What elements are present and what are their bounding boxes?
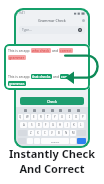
staticText: S xyxy=(31,123,33,127)
staticText: P xyxy=(82,115,84,119)
staticText: N xyxy=(65,131,68,135)
button[interactable]: Q xyxy=(18,114,23,120)
staticText: D xyxy=(38,123,41,127)
staticText: And Correct xyxy=(19,161,85,176)
staticText: that checks xyxy=(32,74,51,79)
staticText: This is an app xyxy=(8,74,31,79)
button[interactable]: X xyxy=(35,130,41,136)
button[interactable]: Tool 6 xyxy=(77,109,80,112)
button[interactable]: W xyxy=(24,114,30,120)
button[interactable]: P xyxy=(80,114,86,120)
button[interactable]: Enter xyxy=(77,138,86,144)
staticText: who check xyxy=(32,48,50,53)
button[interactable]: I xyxy=(66,114,72,120)
staticText: B xyxy=(58,131,60,135)
staticText: V xyxy=(51,131,53,135)
staticText: grammar. xyxy=(9,81,25,86)
staticText: U xyxy=(61,115,64,119)
button[interactable]: O xyxy=(73,114,79,120)
button[interactable]: L xyxy=(78,122,84,128)
button[interactable]: C xyxy=(42,130,48,136)
button[interactable]: S xyxy=(28,122,35,128)
staticText: F xyxy=(45,123,47,127)
button[interactable]: Tool 5 xyxy=(68,109,71,112)
staticText: This is an app xyxy=(8,48,31,53)
staticText: L xyxy=(80,123,82,127)
button[interactable]: J xyxy=(64,122,70,128)
button[interactable]: T xyxy=(45,114,51,120)
staticText: R xyxy=(40,115,42,119)
button[interactable]: Check xyxy=(20,97,84,105)
button[interactable]: Z xyxy=(28,130,34,136)
button[interactable]: E xyxy=(31,114,37,120)
staticText: Type... xyxy=(22,28,32,32)
button[interactable]: Type... xyxy=(19,26,85,34)
button[interactable]: F xyxy=(43,122,49,128)
staticText: H xyxy=(59,123,62,127)
button[interactable]: R xyxy=(38,114,44,120)
button[interactable]: More options xyxy=(82,19,85,22)
staticText: correct xyxy=(60,48,72,53)
button[interactable]: Tool 3 xyxy=(51,109,54,112)
button[interactable]: K xyxy=(71,122,77,128)
staticText: C xyxy=(44,131,46,135)
button[interactable]: Tool 1 xyxy=(33,109,36,112)
staticText: grammer xyxy=(9,55,25,60)
button[interactable]: M xyxy=(70,130,76,136)
staticText: I xyxy=(69,115,70,119)
button[interactable]: Tool 4 xyxy=(59,109,62,112)
staticText: O xyxy=(75,115,78,119)
staticText: J xyxy=(67,123,68,127)
staticText: and xyxy=(52,74,60,79)
button[interactable]: V xyxy=(49,130,55,136)
staticText: Q xyxy=(19,115,22,119)
staticText: W xyxy=(26,115,29,119)
staticText: E xyxy=(33,115,35,119)
staticText: 9:41 xyxy=(19,11,25,15)
staticText: M xyxy=(72,131,75,135)
staticText: Check xyxy=(47,99,57,104)
button[interactable]: Y xyxy=(52,114,58,120)
staticText: K xyxy=(73,123,75,127)
other: Camera xyxy=(78,28,82,32)
button[interactable]: Tool 2 xyxy=(42,109,45,112)
staticText: Instantly Check xyxy=(9,146,95,161)
staticText: G xyxy=(52,123,55,127)
button[interactable]: Tool 0 xyxy=(24,109,27,112)
staticText: and xyxy=(51,48,59,53)
staticText: A xyxy=(23,123,25,127)
button[interactable]: H xyxy=(57,122,63,128)
staticText: T xyxy=(47,115,49,119)
button[interactable]: U xyxy=(59,114,65,120)
staticText: Y xyxy=(54,115,56,119)
button[interactable]: G xyxy=(50,122,56,128)
staticText: X xyxy=(37,131,39,135)
button[interactable]: N xyxy=(63,130,69,136)
button[interactable]: English xyxy=(41,138,69,144)
staticText: Grammar Check xyxy=(38,18,66,23)
button[interactable]: D xyxy=(36,122,42,128)
button[interactable]: A xyxy=(20,122,27,128)
staticText: corr xyxy=(61,74,68,79)
staticText: English xyxy=(51,140,60,143)
button[interactable]: B xyxy=(56,130,62,136)
staticText: Z xyxy=(30,131,32,135)
